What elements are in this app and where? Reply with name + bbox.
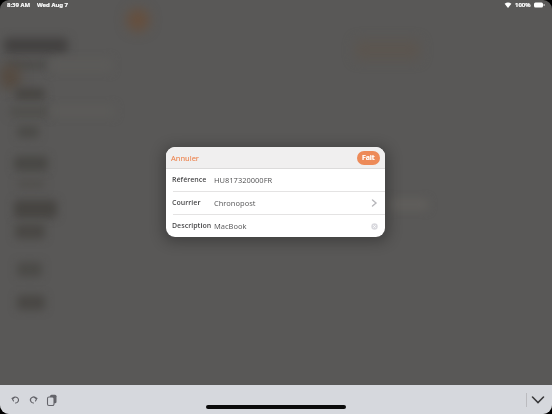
staticText: Courrier: [172, 198, 201, 208]
button[interactable]: [46, 394, 58, 406]
button[interactable]: Description: [166, 215, 385, 237]
staticText: Wed Aug 7: [37, 1, 69, 9]
staticText: Référence: [172, 175, 207, 185]
staticText: Fait: [362, 153, 375, 163]
staticText: Description: [172, 221, 212, 231]
staticText: HU817320000FR: [214, 175, 273, 185]
staticText: 100%: [515, 1, 531, 9]
staticText: 8:39 AM: [7, 1, 31, 9]
staticText: MacBook: [214, 221, 247, 231]
button[interactable]: Annuler: [171, 153, 199, 163]
button[interactable]: Référence: [166, 169, 385, 191]
button[interactable]: [532, 396, 544, 404]
staticText: Annuler: [171, 153, 199, 163]
button[interactable]: Fait: [357, 151, 380, 165]
button[interactable]: Courrier: [166, 192, 385, 214]
button[interactable]: [10, 395, 21, 405]
staticText: Chronopost: [214, 198, 256, 208]
button[interactable]: [28, 395, 39, 405]
